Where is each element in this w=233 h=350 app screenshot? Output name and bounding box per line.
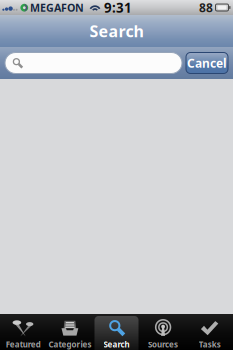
button[interactable]: Cancel bbox=[186, 52, 228, 73]
staticText: Tasks bbox=[199, 339, 221, 350]
button[interactable]: Featured bbox=[0, 314, 47, 350]
staticText: 88 bbox=[199, 0, 213, 15]
staticText: Featured bbox=[6, 339, 41, 350]
staticText: Categories bbox=[48, 339, 91, 350]
button[interactable]: Search bbox=[93, 314, 140, 350]
staticText: MEGAFON bbox=[30, 0, 84, 15]
button[interactable]: Tasks bbox=[186, 314, 233, 350]
staticText: 9:31 bbox=[104, 0, 132, 16]
staticText: Search bbox=[103, 339, 129, 350]
staticText: Cancel bbox=[187, 55, 227, 71]
staticText: Search bbox=[89, 20, 143, 42]
staticText: Sources bbox=[148, 339, 178, 350]
button[interactable]: Sources bbox=[140, 314, 186, 350]
button[interactable]: Categories bbox=[47, 314, 93, 350]
